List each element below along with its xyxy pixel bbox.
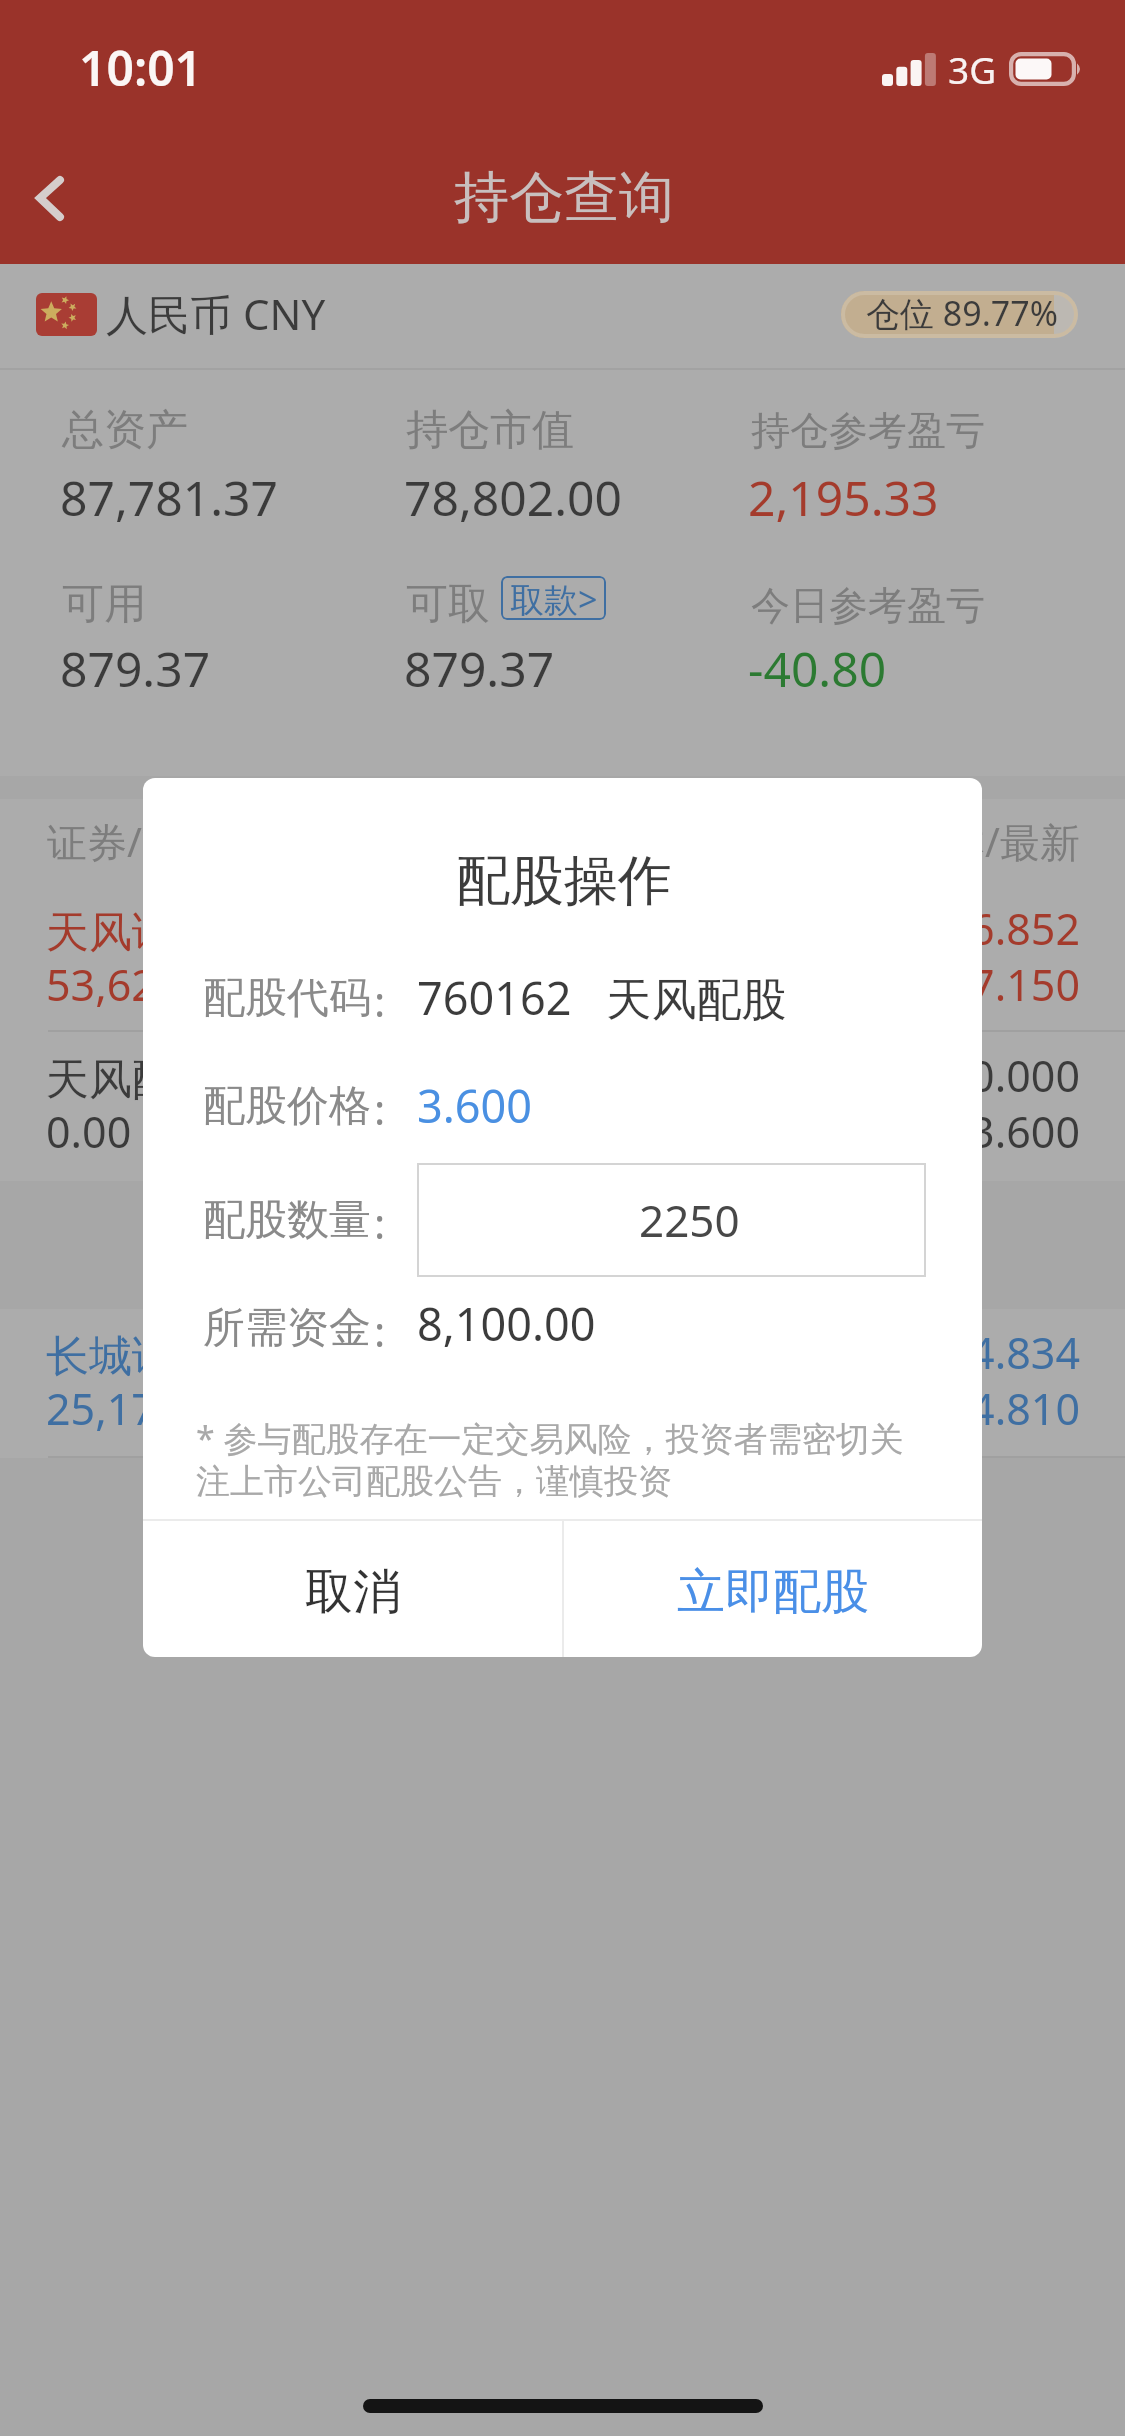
staticText: 长城证券 — [46, 1330, 218, 1384]
staticText: 人民币 CNY — [106, 285, 326, 342]
staticText: 7,000 — [330, 955, 690, 1014]
staticText: 879.37 — [60, 636, 211, 701]
staticText: 配股数量 — [203, 1194, 371, 1247]
staticText: 879.37 — [404, 636, 555, 701]
staticText: 2,195.33 — [748, 465, 939, 530]
staticText: 今日参考盈亏 — [751, 581, 985, 630]
staticText: 5,200 — [330, 1323, 690, 1382]
button[interactable]: 长城证券 — [0, 1309, 1125, 1458]
staticText: 6.852 — [700, 899, 1080, 958]
staticText: 证券/市值 — [47, 814, 222, 869]
button[interactable]: 天风证券 — [0, 885, 1125, 1032]
staticText: 78,802.00 — [404, 465, 622, 530]
staticText: 3G — [948, 44, 997, 94]
staticText: 25,176.00 — [46, 1379, 242, 1438]
staticText: 5,200 — [330, 1379, 690, 1438]
staticText: 取消 — [305, 1562, 401, 1622]
staticText: 持仓/可用 — [400, 814, 725, 869]
staticText: 持仓参考盈亏 — [751, 406, 985, 455]
staticText: 2,250 — [330, 1046, 690, 1105]
staticText: 仓位 89.77% — [866, 290, 1058, 336]
staticText: 0 — [330, 1102, 690, 1161]
staticText: 0.000 — [700, 1046, 1080, 1105]
staticText: : — [374, 1302, 386, 1359]
button[interactable]: Back — [0, 142, 110, 252]
staticText: 取款> — [510, 576, 598, 620]
staticText: : — [374, 972, 386, 1029]
staticText: 3.600 — [417, 1075, 533, 1136]
staticText: 7.150 — [700, 955, 1080, 1014]
staticText: 4.834 — [700, 1323, 1080, 1382]
staticText: 0.00 — [46, 1102, 132, 1161]
staticText: 2250 — [639, 1190, 740, 1250]
staticText: 10:01 — [79, 35, 203, 100]
staticText: 总资产 — [62, 404, 188, 457]
staticText: : — [374, 1080, 386, 1137]
staticText: 成本/最新 — [700, 814, 1080, 869]
staticText: 立即配股 — [677, 1562, 869, 1622]
staticText: 配股价格 — [203, 1080, 371, 1133]
staticText: 7,000 — [330, 899, 690, 958]
staticText: 配股操作 — [456, 847, 672, 915]
staticText: 可用 — [62, 578, 146, 631]
staticText: 87,781.37 — [60, 465, 278, 530]
staticText: -40.80 — [748, 636, 887, 701]
staticText: 持仓市值 — [406, 404, 574, 457]
staticText: 4.810 — [700, 1379, 1080, 1438]
staticText: 天风证券 — [46, 906, 218, 960]
staticText: * 参与配股存在一定交易风险，投资者需密切关 注上市公司配股公告，谨慎投资 — [196, 1415, 904, 1503]
staticText: 760162 天风配股 — [417, 967, 787, 1028]
staticText: 配股代码 — [203, 972, 371, 1025]
button[interactable]: 取款> — [501, 576, 606, 620]
staticText: 53,620.00 — [46, 955, 242, 1014]
button[interactable]: 立即配股 — [564, 1521, 982, 1657]
button[interactable]: 取消 — [143, 1521, 562, 1657]
staticText: 3.600 — [700, 1102, 1080, 1161]
staticText: 8,100.00 — [417, 1293, 596, 1354]
button[interactable]: 天风配股 — [0, 1032, 1125, 1181]
staticText: : — [374, 1194, 386, 1251]
staticText: 可取 — [406, 578, 490, 631]
staticText: 天风配股 — [46, 1053, 218, 1107]
staticText: 所需资金 — [203, 1302, 371, 1355]
staticText: 持仓查询 — [454, 163, 674, 232]
